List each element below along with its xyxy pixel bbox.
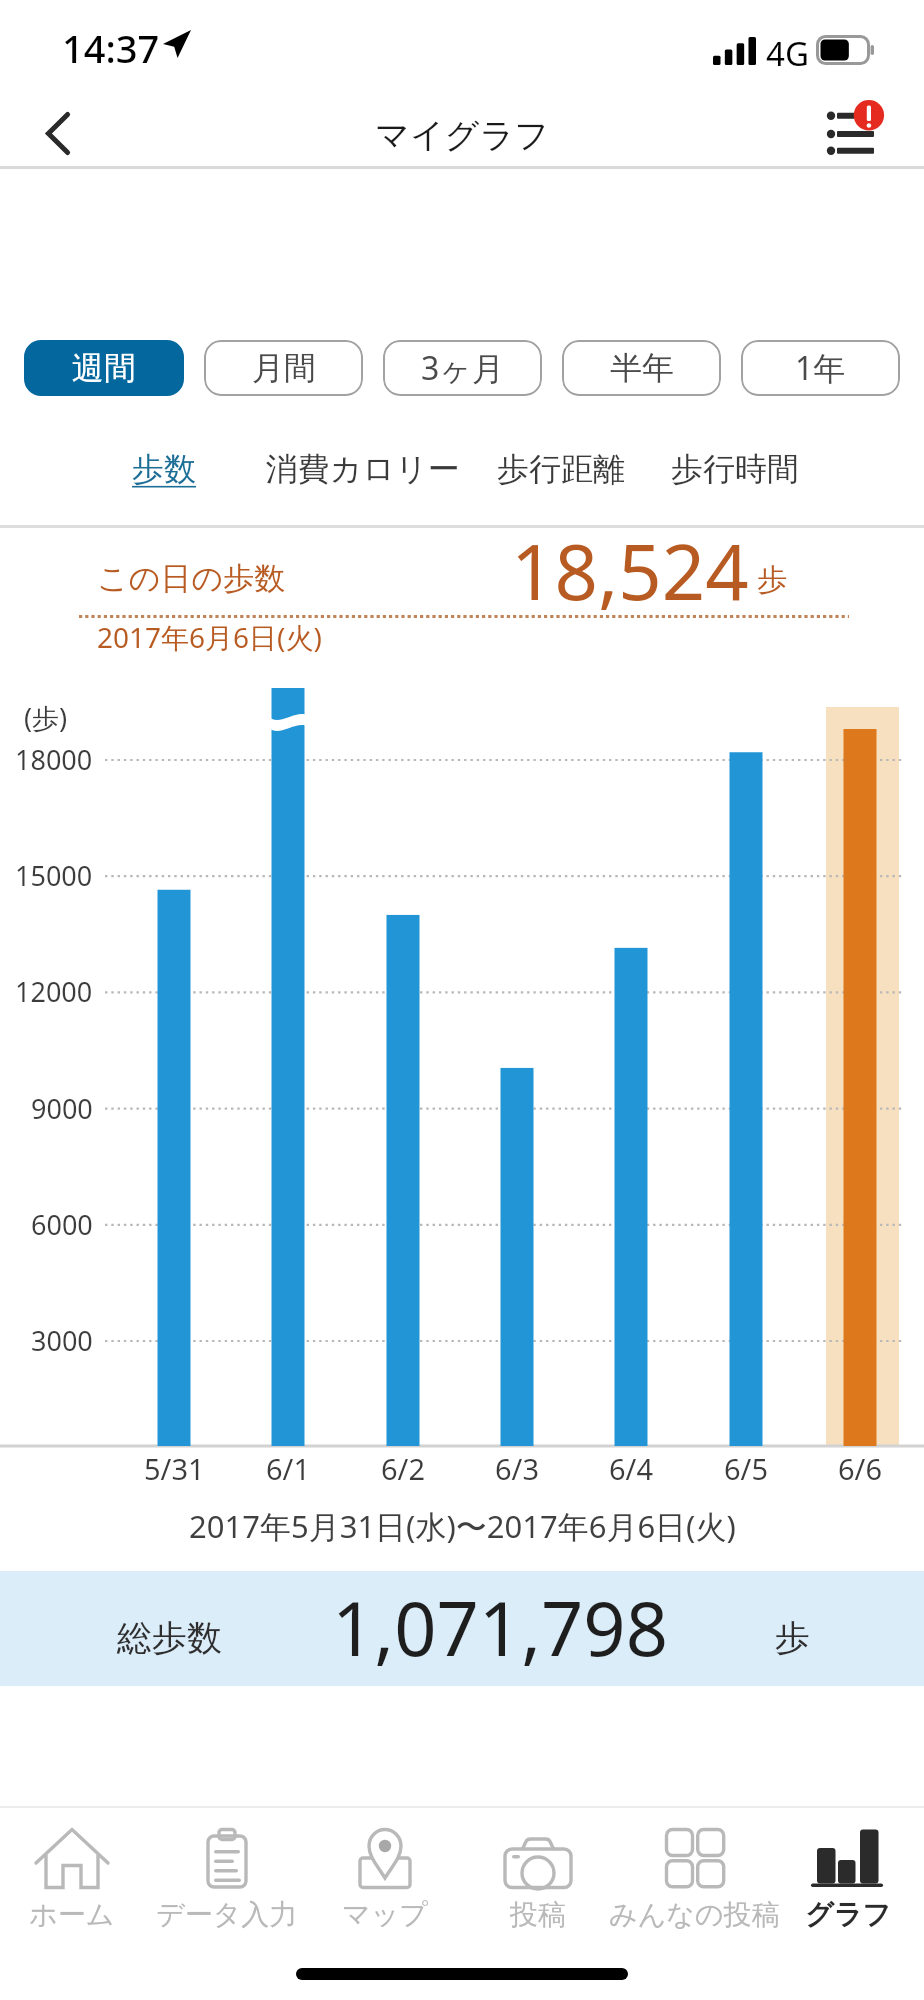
- staticText: マップ: [342, 1897, 428, 1932]
- button[interactable]: データ入力: [139, 1807, 315, 1947]
- button[interactable]: 歩行距離: [483, 440, 639, 498]
- staticText: 1,071,798: [332, 1577, 668, 1678]
- staticText: 6/4: [609, 1449, 653, 1488]
- button[interactable]: マップ: [297, 1807, 473, 1947]
- staticText: 月間: [252, 348, 316, 388]
- button[interactable]: 週間: [24, 340, 184, 396]
- staticText: 消費カロリー: [265, 449, 460, 489]
- button[interactable]: 歩数: [120, 440, 208, 498]
- staticText: 歩: [775, 1616, 810, 1660]
- staticText: 2017年5月31日(水)〜2017年6月6日(火): [189, 1505, 736, 1547]
- staticText: 15000: [15, 857, 93, 894]
- button[interactable]: Notifications: [810, 96, 910, 168]
- button[interactable]: 歩行時間: [657, 440, 813, 498]
- staticText: データ入力: [156, 1897, 298, 1932]
- staticText: グラフ: [805, 1897, 891, 1932]
- staticText: 14:37: [62, 22, 160, 74]
- staticText: 投稿: [510, 1897, 566, 1932]
- button[interactable]: 1年: [741, 340, 900, 396]
- button[interactable]: ホーム: [0, 1807, 160, 1947]
- staticText: この日の歩数: [97, 559, 286, 598]
- staticText: 2017年6月6日(火): [97, 618, 322, 656]
- staticText: ホーム: [29, 1897, 115, 1932]
- staticText: みんなの投稿: [609, 1897, 780, 1932]
- staticText: 半年: [610, 348, 674, 388]
- staticText: 18,524: [511, 519, 749, 623]
- staticText: 12000: [15, 973, 93, 1010]
- button[interactable]: 月間: [204, 340, 363, 396]
- staticText: 3000: [31, 1322, 93, 1359]
- button[interactable]: グラフ: [760, 1807, 924, 1947]
- button[interactable]: みんなの投稿: [606, 1807, 782, 1947]
- staticText: 6/6: [838, 1449, 882, 1488]
- staticText: 6/3: [495, 1449, 539, 1488]
- staticText: 6/1: [266, 1449, 310, 1488]
- staticText: 6000: [31, 1206, 93, 1243]
- button[interactable]: 消費カロリー: [250, 440, 474, 498]
- staticText: 週間: [72, 348, 136, 388]
- staticText: 6/5: [724, 1449, 768, 1488]
- staticText: 1年: [795, 346, 846, 390]
- staticText: マイグラフ: [375, 114, 549, 157]
- button[interactable]: 3ヶ月: [383, 340, 542, 396]
- staticText: 9000: [31, 1090, 93, 1127]
- staticText: 歩: [757, 561, 787, 599]
- staticText: 4G: [766, 31, 809, 76]
- button[interactable]: Back: [8, 96, 108, 170]
- button[interactable]: 半年: [562, 340, 721, 396]
- staticText: 6/2: [381, 1449, 425, 1488]
- staticText: 総歩数: [117, 1616, 222, 1660]
- staticText: 3ヶ月: [421, 346, 505, 390]
- staticText: (歩): [24, 699, 68, 736]
- staticText: 歩行距離: [497, 449, 625, 489]
- staticText: 5/31: [144, 1449, 205, 1488]
- staticText: 歩数: [132, 449, 196, 489]
- staticText: 18000: [15, 741, 93, 778]
- staticText: 歩行時間: [671, 449, 799, 489]
- button[interactable]: 投稿: [450, 1807, 626, 1947]
